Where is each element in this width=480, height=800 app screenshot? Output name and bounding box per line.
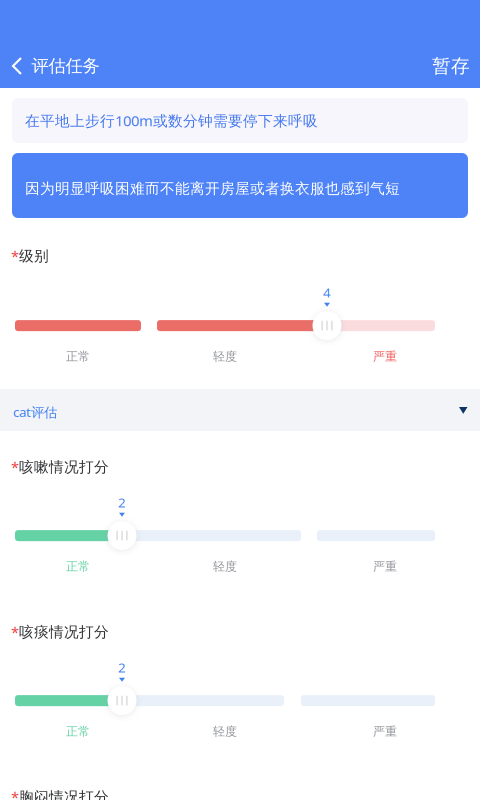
staticText: 咳嗽情况打分 [19,458,109,476]
staticText: 轻度 [213,349,237,364]
button[interactable]: 因为明显呼吸困难而不能离开房屋或者换衣服也感到气短 [12,153,468,218]
staticText: 级别 [19,247,49,265]
staticText: 4 [323,283,331,301]
staticText: 2 [118,493,126,511]
staticText: * [11,246,19,266]
staticText: 胸闷情况打分 [19,788,109,800]
button[interactable]: cat评估 [0,389,480,431]
staticText: 正常 [66,724,90,739]
staticText: 正常 [66,349,90,364]
staticText: 正常 [66,559,90,574]
staticText: 在平地上步行100m或数分钟需要停下来呼吸 [25,111,318,130]
staticText: 评估任务 [31,55,99,77]
staticText: 轻度 [213,559,237,574]
staticText: 轻度 [213,724,237,739]
staticText: cat评估 [13,403,57,421]
staticText: 严重 [373,559,397,574]
staticText: * [11,787,19,800]
button[interactable]: 评估任务 [0,46,140,86]
staticText: 严重 [373,724,397,739]
staticText: 暂存 [432,54,470,77]
staticText: * [11,457,19,477]
staticText: 严重 [373,349,397,364]
button[interactable]: 暂存 [417,46,480,86]
staticText: 咳痰情况打分 [19,623,109,641]
staticText: * [11,622,19,642]
staticText: 因为明显呼吸困难而不能离开房屋或者换衣服也感到气短 [25,179,400,197]
staticText: 2 [118,658,126,676]
